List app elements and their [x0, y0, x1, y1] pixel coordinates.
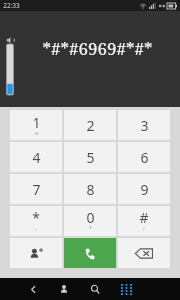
staticText: * [32, 208, 40, 227]
button[interactable]: * [10, 206, 62, 236]
button[interactable]: 2 [64, 110, 116, 140]
staticText: 3 [140, 116, 149, 135]
staticText: 7 [32, 180, 41, 199]
staticText: 1 [32, 113, 41, 132]
staticText: 0 [86, 208, 95, 227]
button[interactable]: 4 [10, 142, 62, 172]
button[interactable]: 0 [64, 206, 116, 236]
staticText: 5 [86, 148, 95, 167]
button[interactable]: Dialpad [115, 278, 137, 300]
button[interactable]: 1 [10, 110, 62, 140]
button[interactable]: Contacts [53, 278, 75, 300]
staticText: 4 [32, 148, 41, 167]
staticText: + [89, 225, 92, 232]
staticText: 22:33 [3, 1, 20, 10]
staticText: ∞ [34, 130, 39, 136]
button[interactable]: Search [84, 278, 106, 300]
button[interactable]: 9 [118, 174, 170, 204]
staticText: 9 [140, 180, 149, 199]
button[interactable]: Add contact [10, 238, 62, 268]
button[interactable]: 5 [64, 142, 116, 172]
staticText: ; [143, 225, 145, 232]
button[interactable]: 6 [118, 142, 170, 172]
staticText: 8 [86, 180, 95, 199]
button[interactable]: 8 [64, 174, 116, 204]
staticText: 2 [86, 116, 95, 135]
button[interactable]: 3 [118, 110, 170, 140]
button[interactable]: 7 [10, 174, 62, 204]
button[interactable]: Back [22, 278, 44, 300]
button[interactable]: Call [64, 238, 116, 268]
button[interactable]: # [118, 206, 170, 236]
staticText: , [35, 225, 37, 232]
staticText: *#*#6969#*#* [42, 37, 153, 60]
staticText: # [139, 208, 149, 227]
button[interactable]: Backspace [118, 238, 170, 268]
staticText: 6 [140, 148, 149, 167]
